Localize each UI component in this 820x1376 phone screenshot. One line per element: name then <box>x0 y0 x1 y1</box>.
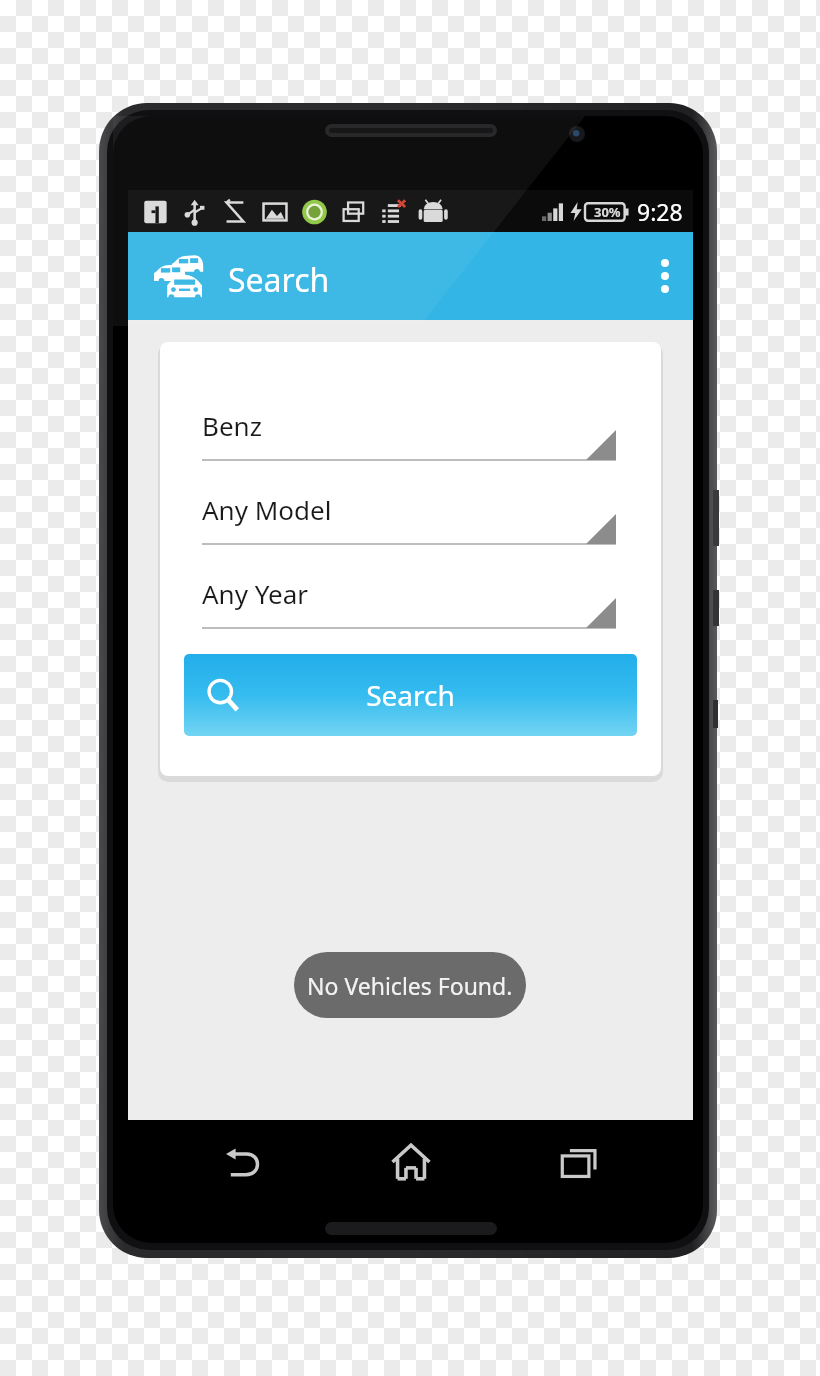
staticText: Search <box>366 676 455 714</box>
button[interactable]: Recent apps <box>524 1120 634 1204</box>
button[interactable]: Home <box>356 1120 466 1204</box>
staticText: Search <box>228 258 330 302</box>
button[interactable]: More options <box>637 232 693 320</box>
button[interactable]: Any Model <box>202 488 616 554</box>
button[interactable]: Any Year <box>202 572 616 638</box>
staticText: 30% <box>594 203 621 221</box>
button[interactable]: Benz <box>202 404 616 470</box>
button[interactable]: Back <box>187 1120 297 1204</box>
staticText: Benz <box>202 408 262 443</box>
staticText: Any Model <box>202 492 332 527</box>
staticText: No Vehicles Found. <box>307 970 513 1001</box>
button[interactable]: Search <box>184 654 637 736</box>
staticText: 9:28 <box>637 196 683 227</box>
staticText: Any Year <box>202 576 309 611</box>
